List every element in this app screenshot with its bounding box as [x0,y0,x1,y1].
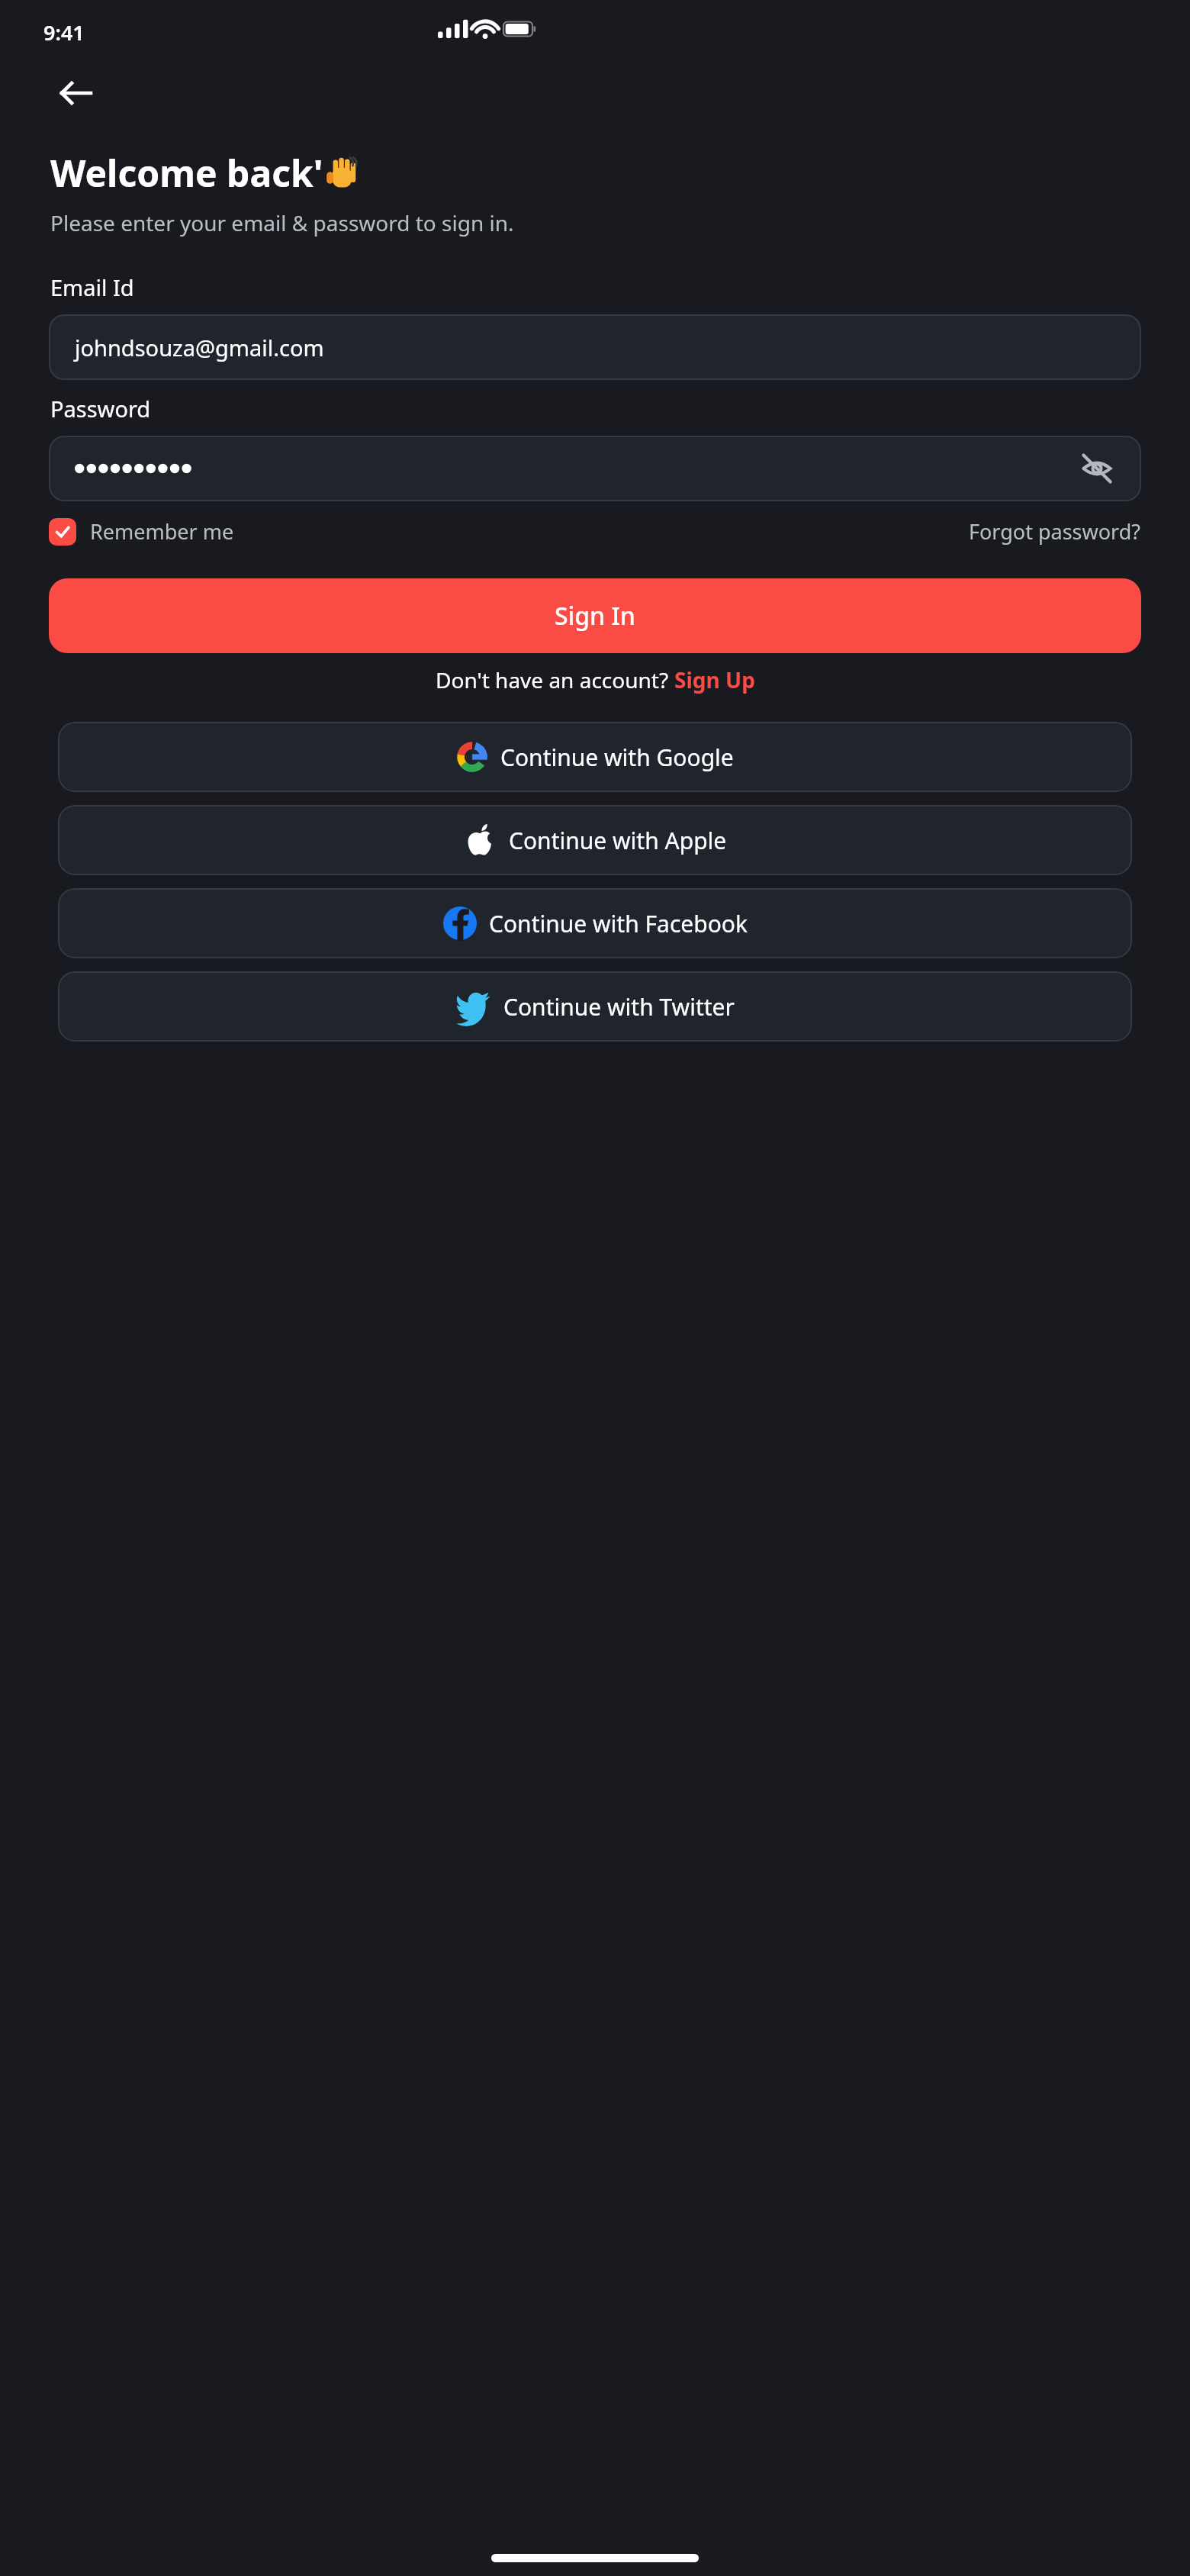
staticText: Continue with Google [500,742,734,773]
staticText: Please enter your email & password to si… [50,208,514,237]
staticText: Continue with Twitter [503,991,735,1022]
staticText: 9:41 [43,18,85,47]
button[interactable]: Toggle password visibility [1071,443,1123,494]
staticText: Welcome back' [50,148,323,198]
staticText: Continue with Apple [509,825,727,856]
staticText: Don't have an account? [436,665,674,694]
button[interactable]: Continue with Apple [58,805,1132,875]
button[interactable]: Toggle password visibility [49,436,1141,501]
button[interactable]: Back [53,70,99,116]
staticText: Continue with Facebook [489,908,748,939]
button[interactable]: Sign Up [674,665,755,694]
button[interactable]: Continue with Google [58,722,1132,792]
staticText: Sign Up [674,665,755,694]
staticText: johndsouza@gmail.com [75,333,324,362]
staticText: Remember me [90,517,234,546]
staticText: Email Id [50,272,134,302]
staticText: Forgot password? [969,517,1141,546]
button[interactable]: Remember me [49,517,234,546]
button[interactable]: Sign In [49,578,1141,653]
button[interactable]: Continue with Twitter [58,971,1132,1042]
button[interactable]: Forgot password? [969,517,1141,546]
button[interactable]: Continue with Facebook [58,888,1132,958]
staticText: Password [50,394,151,423]
button[interactable]: johndsouza@gmail.com [49,314,1141,380]
staticText: Sign In [555,599,635,633]
